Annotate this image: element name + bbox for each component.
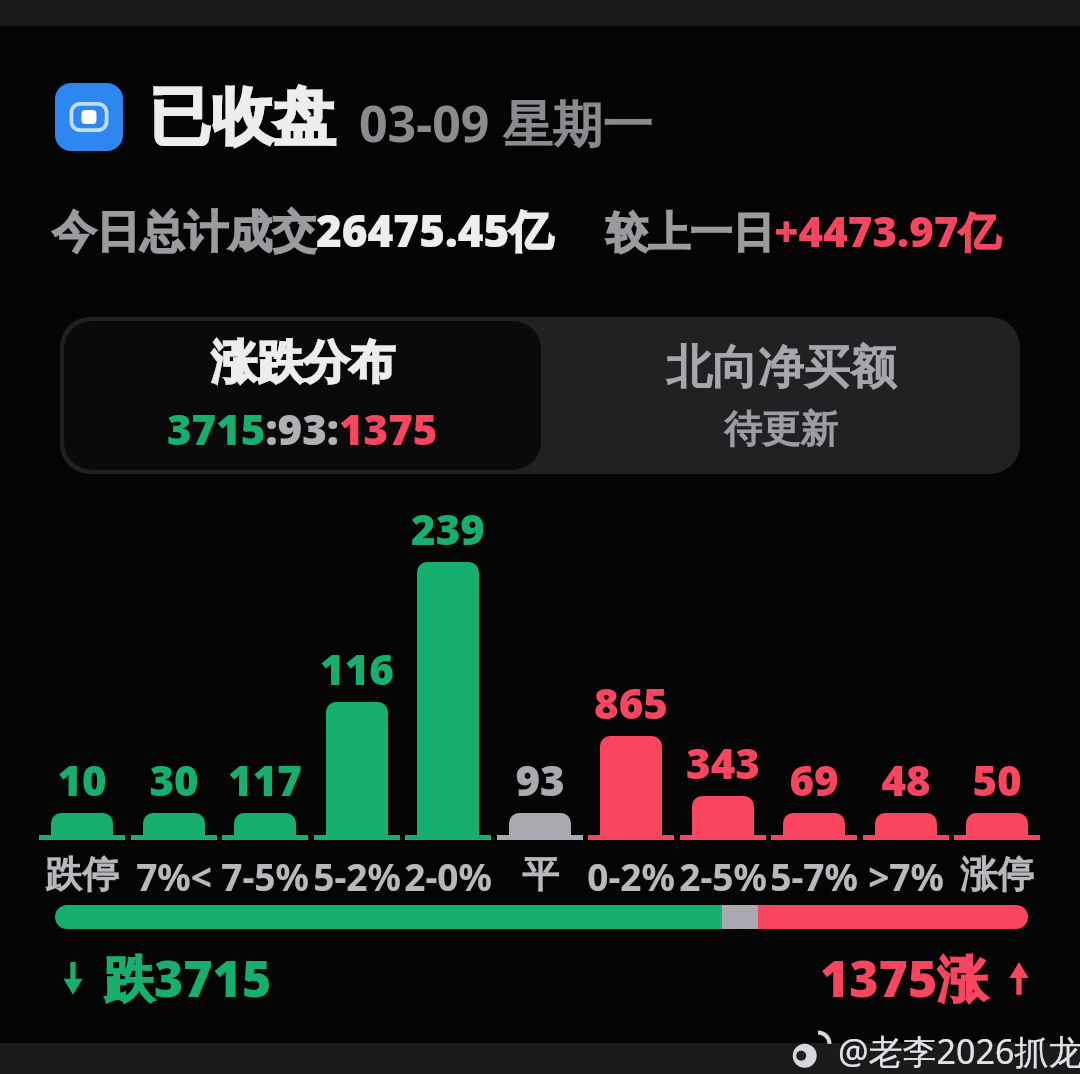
staticText: 跌3715 [104,944,272,1012]
staticText: 2-0% [404,851,492,901]
button[interactable]: 北向净买额 [541,317,1020,474]
button[interactable] [783,813,845,835]
staticText: 865 [594,674,668,731]
staticText: 跌停 [45,851,119,898]
staticText: 10 [57,751,107,808]
button[interactable] [875,813,937,835]
staticText: 03-09 星期一 [359,89,653,157]
staticText: >7% [868,851,944,901]
other: App icon [55,83,123,151]
staticText: 343 [686,734,760,791]
staticText: 较上一日+4473.97亿 [606,202,1001,259]
staticText: 北向净买额 [666,339,896,397]
button[interactable] [600,736,662,835]
staticText: 30 [149,751,199,808]
staticText: 今日总计成交26475.45亿 [52,200,554,260]
staticText: 平 [522,851,559,898]
staticText: 涨跌分布 [211,334,395,392]
staticText: 69 [789,751,839,808]
staticText: 1375涨 [820,944,988,1012]
staticText: @老李2026抓龙头 [838,1028,1080,1074]
staticText: 93 [515,751,565,808]
staticText: 0-2% [587,851,675,901]
staticText: 1168 [311,640,403,754]
button[interactable] [51,813,113,835]
button[interactable]: 涨跌分布 [64,321,541,470]
button[interactable] [509,813,571,835]
button[interactable] [143,813,205,835]
staticText: 5-2% [313,851,401,901]
button[interactable] [966,813,1028,835]
staticText: 7-5% [221,851,309,901]
staticText: 2-5% [679,851,767,901]
staticText: 待更新 [724,405,838,453]
staticText: 2390 [402,500,494,614]
staticText: 5-7% [770,851,858,901]
staticText: 涨停 [960,851,1034,898]
button[interactable] [692,796,754,835]
button[interactable] [55,905,1028,929]
staticText: 50 [972,751,1022,808]
staticText: 3715:93:1375 [167,400,438,457]
button[interactable] [234,813,296,835]
staticText: 已收盘 [149,78,335,156]
staticText: 7%< [136,851,212,901]
staticText: 117 [228,751,302,808]
button[interactable]: App icon [55,78,653,156]
button[interactable] [326,702,388,835]
button[interactable]: 今日总计成交26475.45亿 [52,200,1001,260]
staticText: 48 [881,751,931,808]
button[interactable] [417,562,479,835]
